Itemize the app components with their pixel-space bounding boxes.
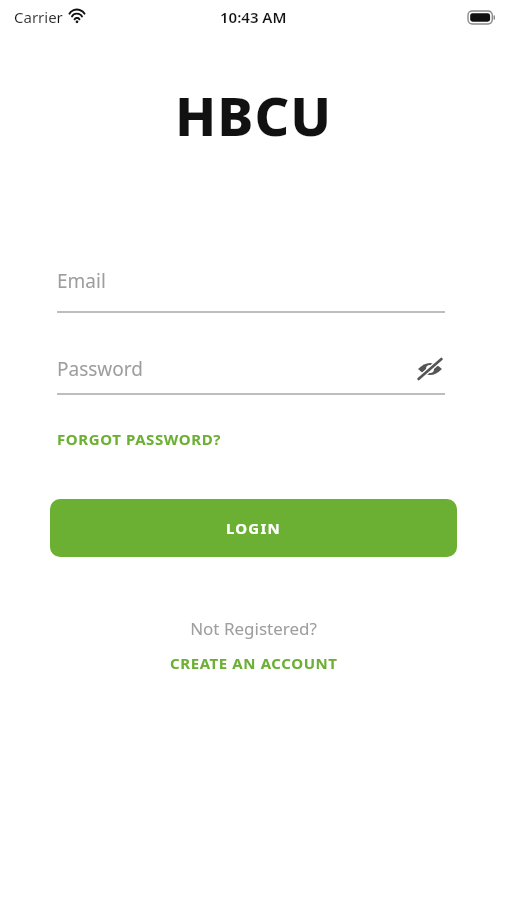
staticText: Password [57,356,143,382]
staticText: 10:43 AM [220,7,287,27]
staticText: FORGOT PASSWORD? [57,429,222,449]
staticText: Not Registered? [190,617,317,640]
button[interactable]: FORGOT PASSWORD? [57,427,222,451]
button[interactable]: Show password [415,354,445,384]
staticText: Email [57,268,106,294]
staticText: HBCU [175,78,333,152]
button[interactable]: Password [57,354,445,384]
button[interactable]: Email [57,268,445,313]
staticText: LOGIN [226,518,281,538]
button[interactable]: CREATE AN ACCOUNT [164,651,344,675]
button[interactable]: LOGIN [50,499,457,557]
staticText: Carrier [14,7,63,27]
staticText: CREATE AN ACCOUNT [170,653,338,673]
